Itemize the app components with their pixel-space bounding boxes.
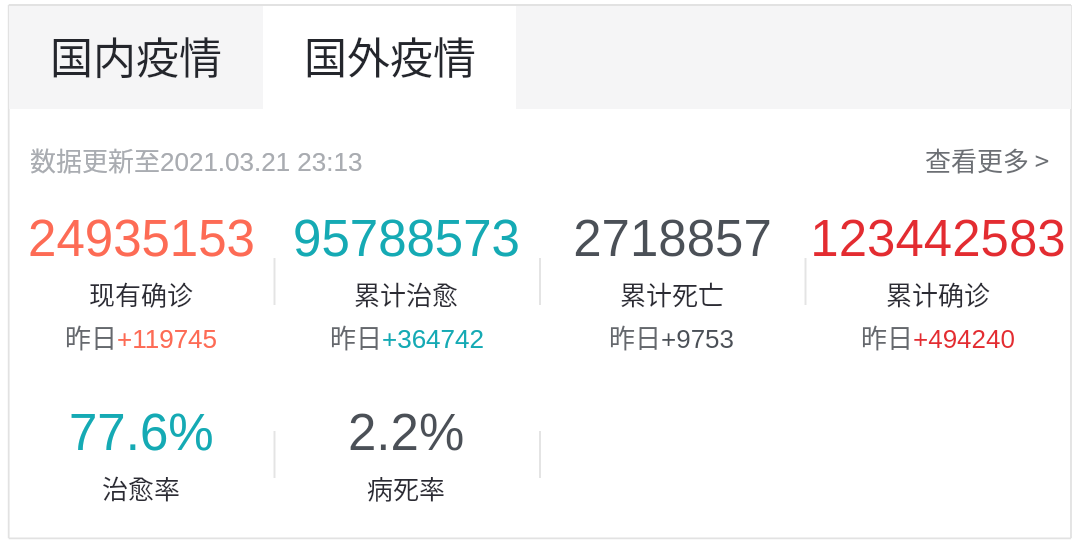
staticText: 昨日+119745 [65,318,218,356]
button[interactable]: 123442583 [805,210,1071,380]
button[interactable]: 77.6% [9,404,274,524]
staticText: 国内疫情 [50,24,222,86]
staticText: 数据更新至2021.03.21 23:13 [30,141,363,179]
staticText: 昨日+9753 [609,318,735,356]
button[interactable]: 2718857 [539,210,805,380]
staticText: 昨日+364742 [330,318,484,356]
staticText: 123442583 [810,210,1066,267]
staticText: 查看更多 > [925,141,1050,179]
staticText: 累计治愈 [354,275,459,313]
button[interactable]: 24935153 [9,210,274,380]
staticText: 77.6% [69,404,214,461]
staticText: 病死率 [367,469,446,507]
staticText: 治愈率 [102,469,181,507]
button[interactable]: 95788573 [274,210,539,380]
button[interactable]: 国外疫情 [263,6,516,109]
staticText: 昨日+494240 [861,318,1015,356]
staticText: 累计确诊 [886,275,991,313]
button[interactable]: 查看更多 > [913,133,1071,187]
staticText: 累计死亡 [620,275,725,313]
staticText: 2718857 [573,210,772,267]
button[interactable]: 国内疫情 [9,6,263,109]
staticText: 国外疫情 [304,24,476,86]
button[interactable]: 2.2% [274,404,539,524]
staticText: 2.2% [348,404,465,461]
staticText: 24935153 [28,210,255,267]
staticText: 95788573 [293,210,520,267]
staticText: 现有确诊 [89,275,194,313]
